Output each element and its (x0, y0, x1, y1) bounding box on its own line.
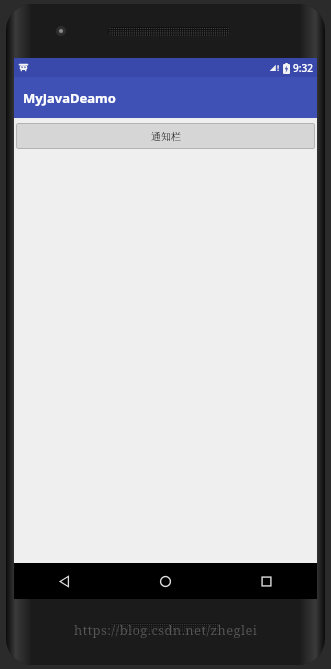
staticText: MyJavaDeamo (23, 89, 116, 107)
button[interactable]: Home (115, 563, 216, 599)
button[interactable]: Recent apps (216, 563, 317, 599)
staticText: https://blog.csdn.net/zheglei (74, 621, 258, 639)
staticText: 9:32 (293, 61, 313, 75)
button[interactable]: Back (14, 563, 115, 599)
button[interactable]: 通知栏 (16, 123, 315, 149)
staticText: 通知栏 (151, 130, 181, 143)
